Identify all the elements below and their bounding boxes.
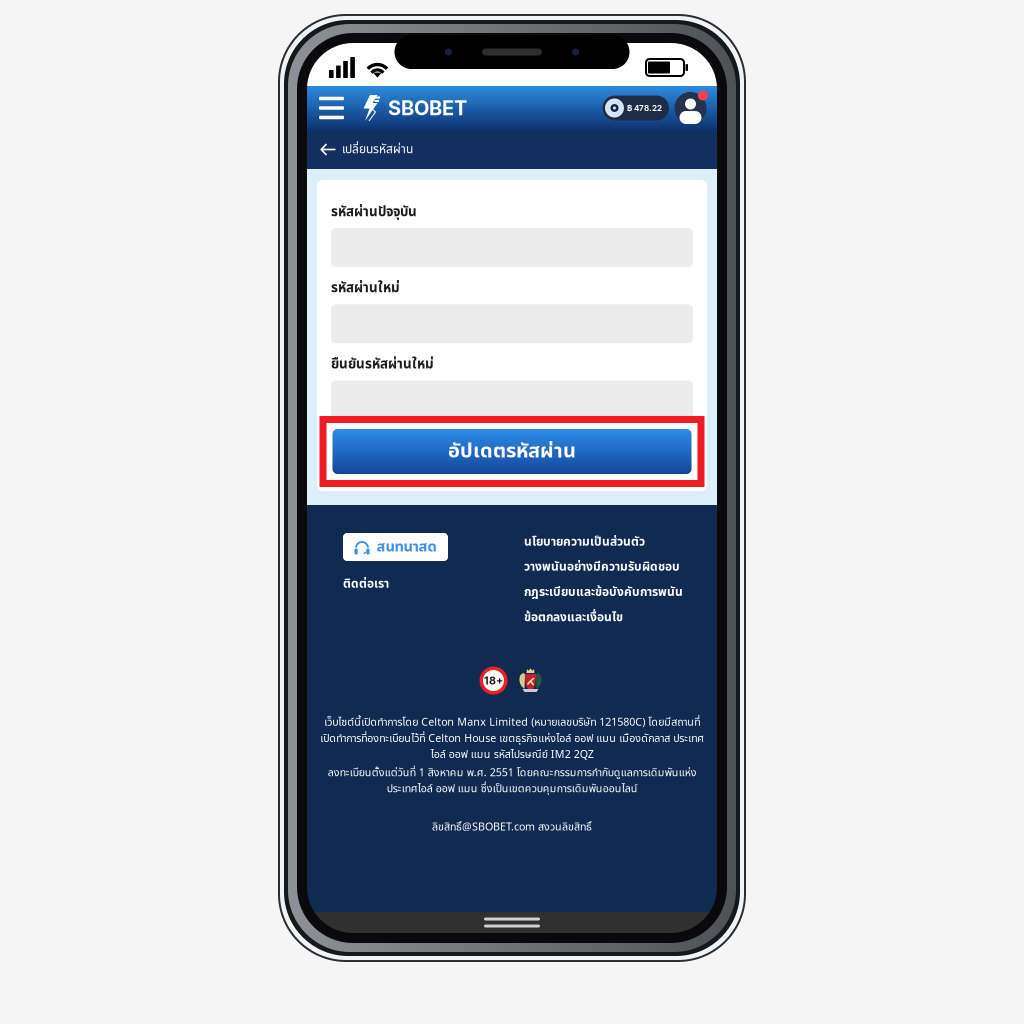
staticText: สนทนาสด (376, 536, 436, 558)
button[interactable]: วางพนันอย่างมีความรับผิดชอบ (524, 558, 680, 576)
button[interactable]: ข้อตกลงและเงื่อนไข (524, 608, 623, 626)
staticText: นโยบายความเป็นส่วนตัว (524, 533, 645, 551)
staticText: อัปเดตรหัสผ่าน (448, 436, 576, 467)
button[interactable]: Account (673, 90, 708, 125)
button[interactable]: อัปเดตรหัสผ่าน (319, 416, 704, 487)
staticText: กฎระเบียบและข้อบังคับการพนัน (524, 583, 683, 601)
button[interactable]: Menu (316, 89, 347, 127)
staticText: ลงทะเบียนตั้งแต่วันที่ 1 สิงหาคม พ.ศ. 25… (327, 765, 696, 797)
staticText: ฿ 478.22 (627, 103, 662, 113)
button[interactable]: เปลี่ยนรหัสผ่าน (307, 130, 717, 169)
staticText: ติดต่อเรา (343, 575, 389, 593)
button[interactable]: กฎระเบียบและข้อบังคับการพนัน (524, 583, 683, 601)
staticText: เว็บไซต์นี้เปิดทำการโดย Celton Manx Limi… (320, 714, 704, 763)
button[interactable]: Balance (602, 95, 669, 120)
staticText: ลิขสิทธิ์@SBOBET.com สงวนลิขสิทธิ์ (432, 819, 592, 835)
staticText: วางพนันอย่างมีความรับผิดชอบ (524, 558, 680, 576)
staticText: SBOBET (388, 96, 467, 120)
staticText: เปลี่ยนรหัสผ่าน (342, 140, 413, 158)
staticText: 18+ (484, 674, 503, 687)
staticText: ยืนยันรหัสผ่านใหม่ (331, 354, 434, 374)
button[interactable]: สนทนาสด (343, 533, 448, 561)
button[interactable]: นโยบายความเป็นส่วนตัว (524, 533, 645, 551)
staticText: รหัสผ่านใหม่ (331, 278, 400, 298)
staticText: ข้อตกลงและเงื่อนไข (524, 608, 623, 626)
staticText: รหัสผ่านปัจจุบัน (331, 202, 417, 222)
button[interactable]: SBOBET (361, 94, 467, 122)
button[interactable]: ติดต่อเรา (343, 573, 389, 595)
